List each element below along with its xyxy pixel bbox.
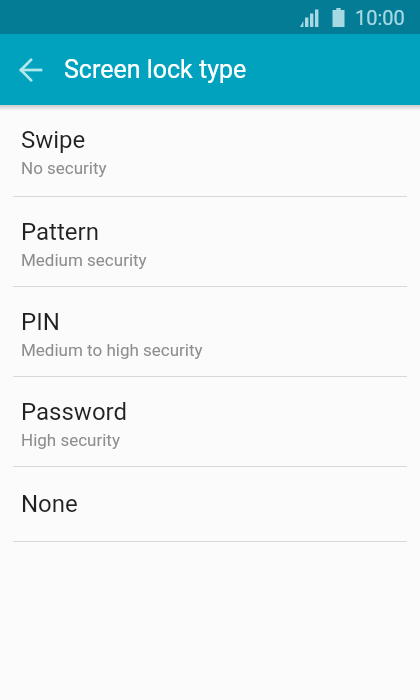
staticText: No security <box>21 158 107 178</box>
staticText: Medium security <box>21 250 147 270</box>
staticText: PIN <box>21 308 60 336</box>
button[interactable]: None <box>0 467 420 541</box>
staticText: High security <box>21 430 120 450</box>
button[interactable] <box>0 34 58 105</box>
staticText: None <box>21 490 78 518</box>
button[interactable]: Password <box>0 377 420 466</box>
staticText: Password <box>21 398 128 426</box>
staticText: Pattern <box>21 218 99 246</box>
button[interactable]: Pattern <box>0 197 420 286</box>
staticText: 10:00 <box>355 6 405 29</box>
staticText: Swipe <box>21 126 86 154</box>
staticText: Screen lock type <box>64 55 247 84</box>
staticText: Medium to high security <box>21 340 203 360</box>
button[interactable]: Swipe <box>0 105 420 196</box>
button[interactable]: PIN <box>0 287 420 376</box>
